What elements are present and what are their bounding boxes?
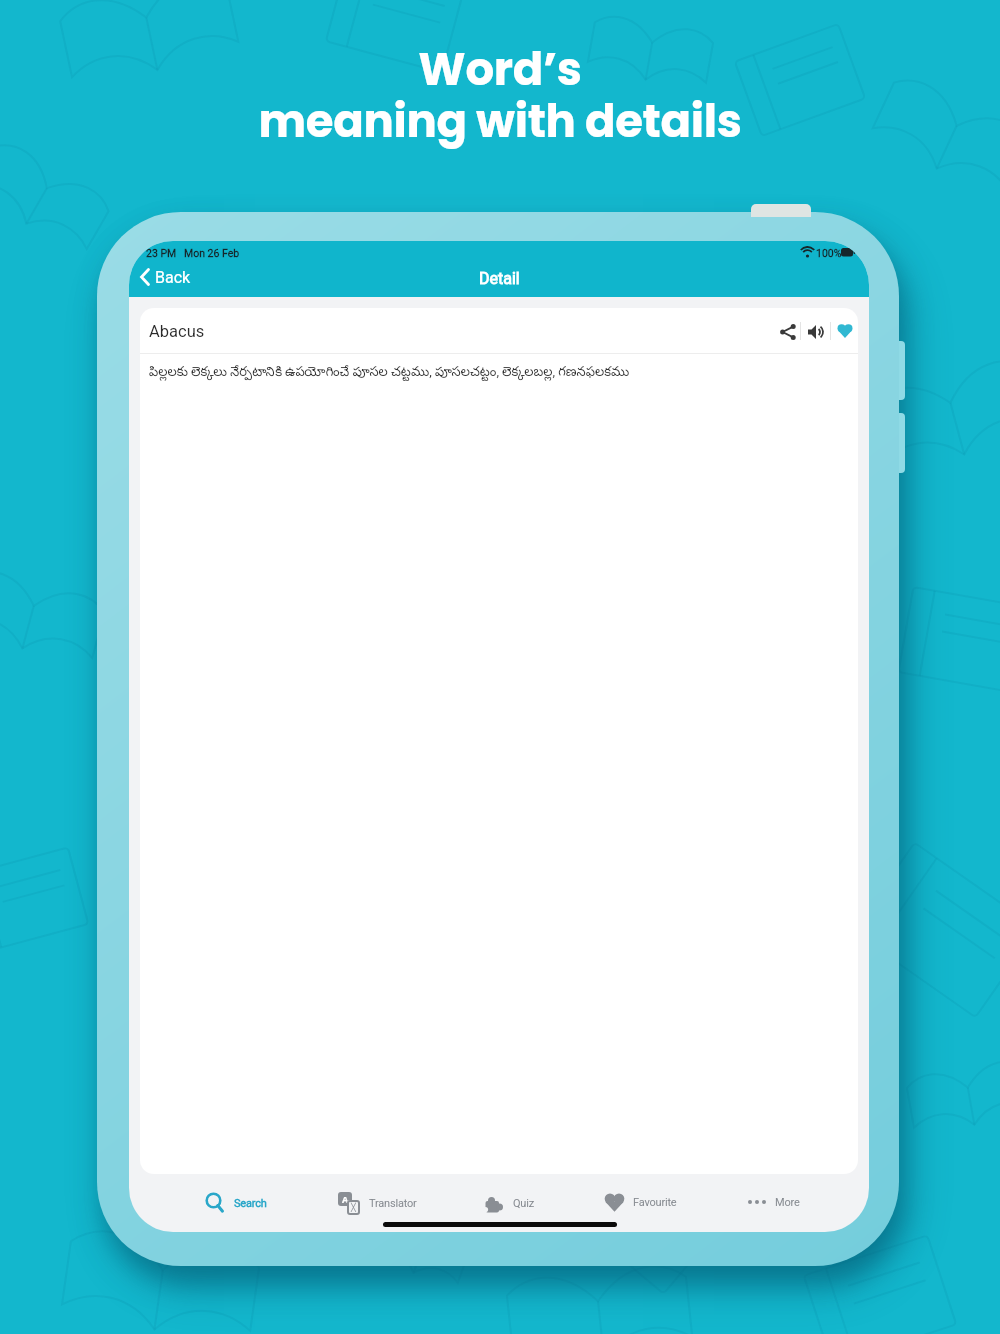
staticText: Word’s meaning with details xyxy=(258,38,742,153)
button[interactable]: Search xyxy=(204,1192,267,1214)
staticText: Search xyxy=(234,1197,267,1210)
staticText: 100% xyxy=(816,247,842,259)
button[interactable]: Quiz xyxy=(483,1192,534,1214)
button[interactable]: More xyxy=(747,1192,800,1212)
staticText: 23 PM xyxy=(146,247,177,259)
button[interactable] xyxy=(780,324,795,339)
staticText: ╳ xyxy=(351,1203,356,1212)
staticText: పిల్లలకు లెక్కలు నేర్పటానికి ఉపయోగించే ప… xyxy=(149,364,630,382)
staticText: A xyxy=(342,1193,349,1205)
staticText: Translator xyxy=(369,1197,417,1210)
button[interactable]: Favourite xyxy=(604,1192,677,1213)
staticText: Mon 26 Feb xyxy=(184,247,240,259)
staticText: Favourite xyxy=(633,1196,677,1209)
staticText: Detail xyxy=(479,269,520,288)
staticText: Abacus xyxy=(149,322,205,341)
button[interactable] xyxy=(807,323,824,340)
staticText: More xyxy=(775,1196,800,1209)
button[interactable]: Back xyxy=(139,267,191,287)
button[interactable]: A xyxy=(338,1192,417,1215)
staticText: Back xyxy=(155,268,191,287)
button[interactable] xyxy=(837,323,853,339)
staticText: Quiz xyxy=(513,1197,534,1210)
